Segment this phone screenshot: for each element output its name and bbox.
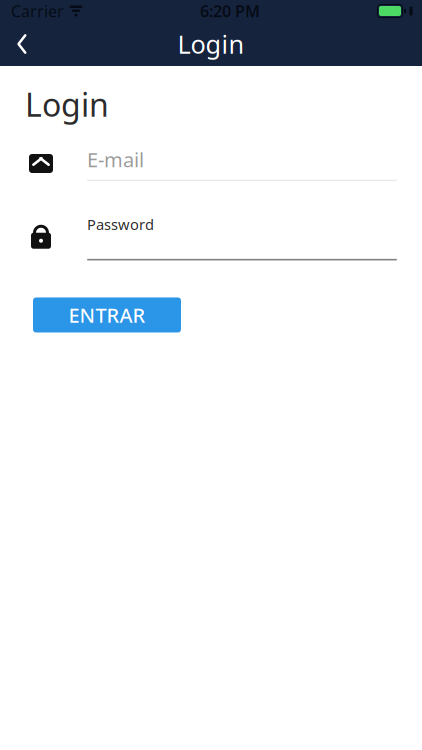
button[interactable]: Back xyxy=(0,22,44,66)
staticText: 6:20 PM xyxy=(200,0,260,22)
staticText: Login xyxy=(177,27,244,61)
staticText: ENTRAR xyxy=(68,302,145,328)
staticText: Password xyxy=(87,214,154,234)
staticText: Carrier xyxy=(11,0,64,22)
button[interactable]: ENTRAR xyxy=(33,297,181,332)
staticText: Login xyxy=(25,83,109,125)
staticText: E-mail xyxy=(87,146,144,173)
